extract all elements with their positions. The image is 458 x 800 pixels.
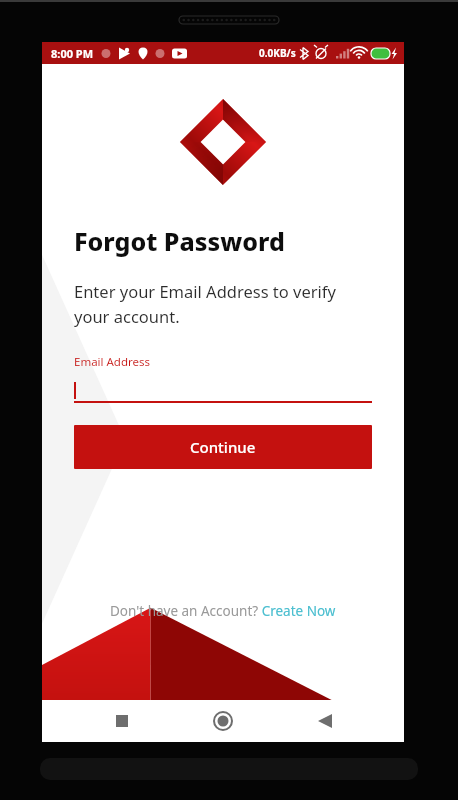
button[interactable]: Recent apps <box>100 700 144 742</box>
button[interactable]: Continue <box>74 425 372 469</box>
button[interactable]: Back <box>303 700 347 742</box>
staticText: Don't have an Account? Create Now <box>110 602 336 620</box>
staticText: Email Address <box>74 354 151 370</box>
staticText: Enter your Email Address to verify your … <box>74 280 336 328</box>
staticText: Continue <box>190 437 256 457</box>
staticText: Forgot Password <box>74 224 285 258</box>
button[interactable]: Email Address <box>74 354 372 403</box>
staticText: 0.0KB/s <box>259 46 296 60</box>
button[interactable]: Don't have an Account? Create Now <box>42 602 404 620</box>
button[interactable]: Home <box>201 700 245 742</box>
staticText: 8:00 PM <box>51 46 94 61</box>
